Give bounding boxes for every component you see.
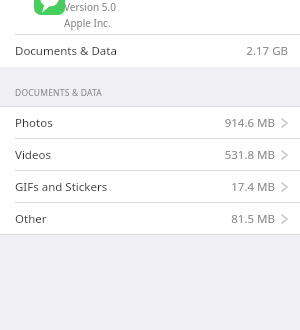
button[interactable]: GIFs and Stickers bbox=[0, 171, 300, 202]
button[interactable]: Videos bbox=[0, 139, 300, 170]
staticText: Documents & Data bbox=[15, 43, 117, 59]
staticText: 531.8 MB bbox=[224, 147, 275, 163]
staticText: 2.17 GB bbox=[246, 43, 288, 59]
staticText: GIFs and Stickers bbox=[15, 179, 108, 195]
staticText: Version 5.0 bbox=[64, 0, 116, 14]
staticText: Videos bbox=[15, 147, 51, 163]
button[interactable]: Photos bbox=[0, 107, 300, 138]
staticText: Apple Inc. bbox=[64, 16, 111, 30]
staticText: Photos bbox=[15, 115, 53, 131]
staticText: 81.5 MB bbox=[231, 211, 275, 227]
button[interactable]: Documents & Data bbox=[0, 35, 300, 67]
staticText: 17.4 MB bbox=[231, 179, 275, 195]
button[interactable]: Other bbox=[0, 203, 300, 234]
staticText: Other bbox=[15, 211, 47, 227]
staticText: DOCUMENTS & DATA bbox=[15, 87, 102, 99]
staticText: 914.6 MB bbox=[224, 115, 275, 131]
